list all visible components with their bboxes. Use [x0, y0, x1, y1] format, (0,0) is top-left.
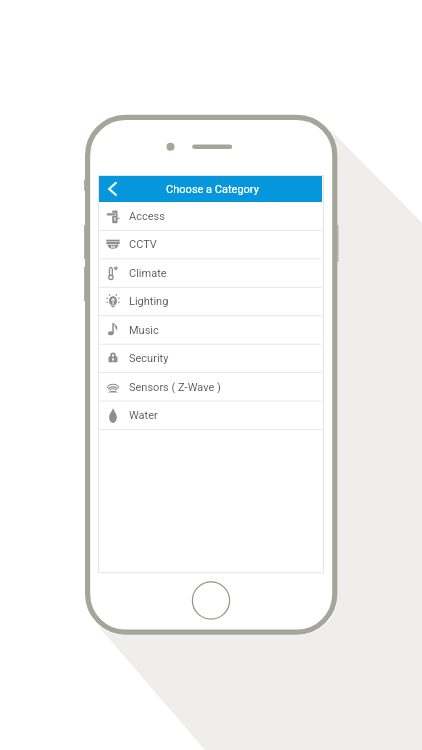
- staticText: Lighting: [129, 295, 169, 308]
- staticText: CCTV: [129, 238, 157, 251]
- button[interactable]: CCTV: [99, 230, 322, 258]
- staticText: Access: [129, 210, 165, 223]
- button[interactable]: Climate: [99, 259, 322, 287]
- staticText: Climate: [129, 267, 167, 280]
- button[interactable]: Access: [99, 202, 322, 230]
- staticText: Choose a Category: [101, 183, 324, 196]
- staticText: Sensors ( Z-Wave ): [129, 381, 221, 394]
- button[interactable]: Security: [99, 344, 322, 372]
- staticText: Water: [129, 409, 158, 422]
- button[interactable]: Music: [99, 316, 322, 344]
- staticText: Security: [129, 352, 169, 365]
- button[interactable]: Lighting: [99, 287, 322, 315]
- button[interactable]: Back: [99, 176, 127, 201]
- button[interactable]: Water: [99, 401, 322, 429]
- staticText: Music: [129, 324, 159, 337]
- button[interactable]: Sensors ( Z-Wave ): [99, 373, 322, 401]
